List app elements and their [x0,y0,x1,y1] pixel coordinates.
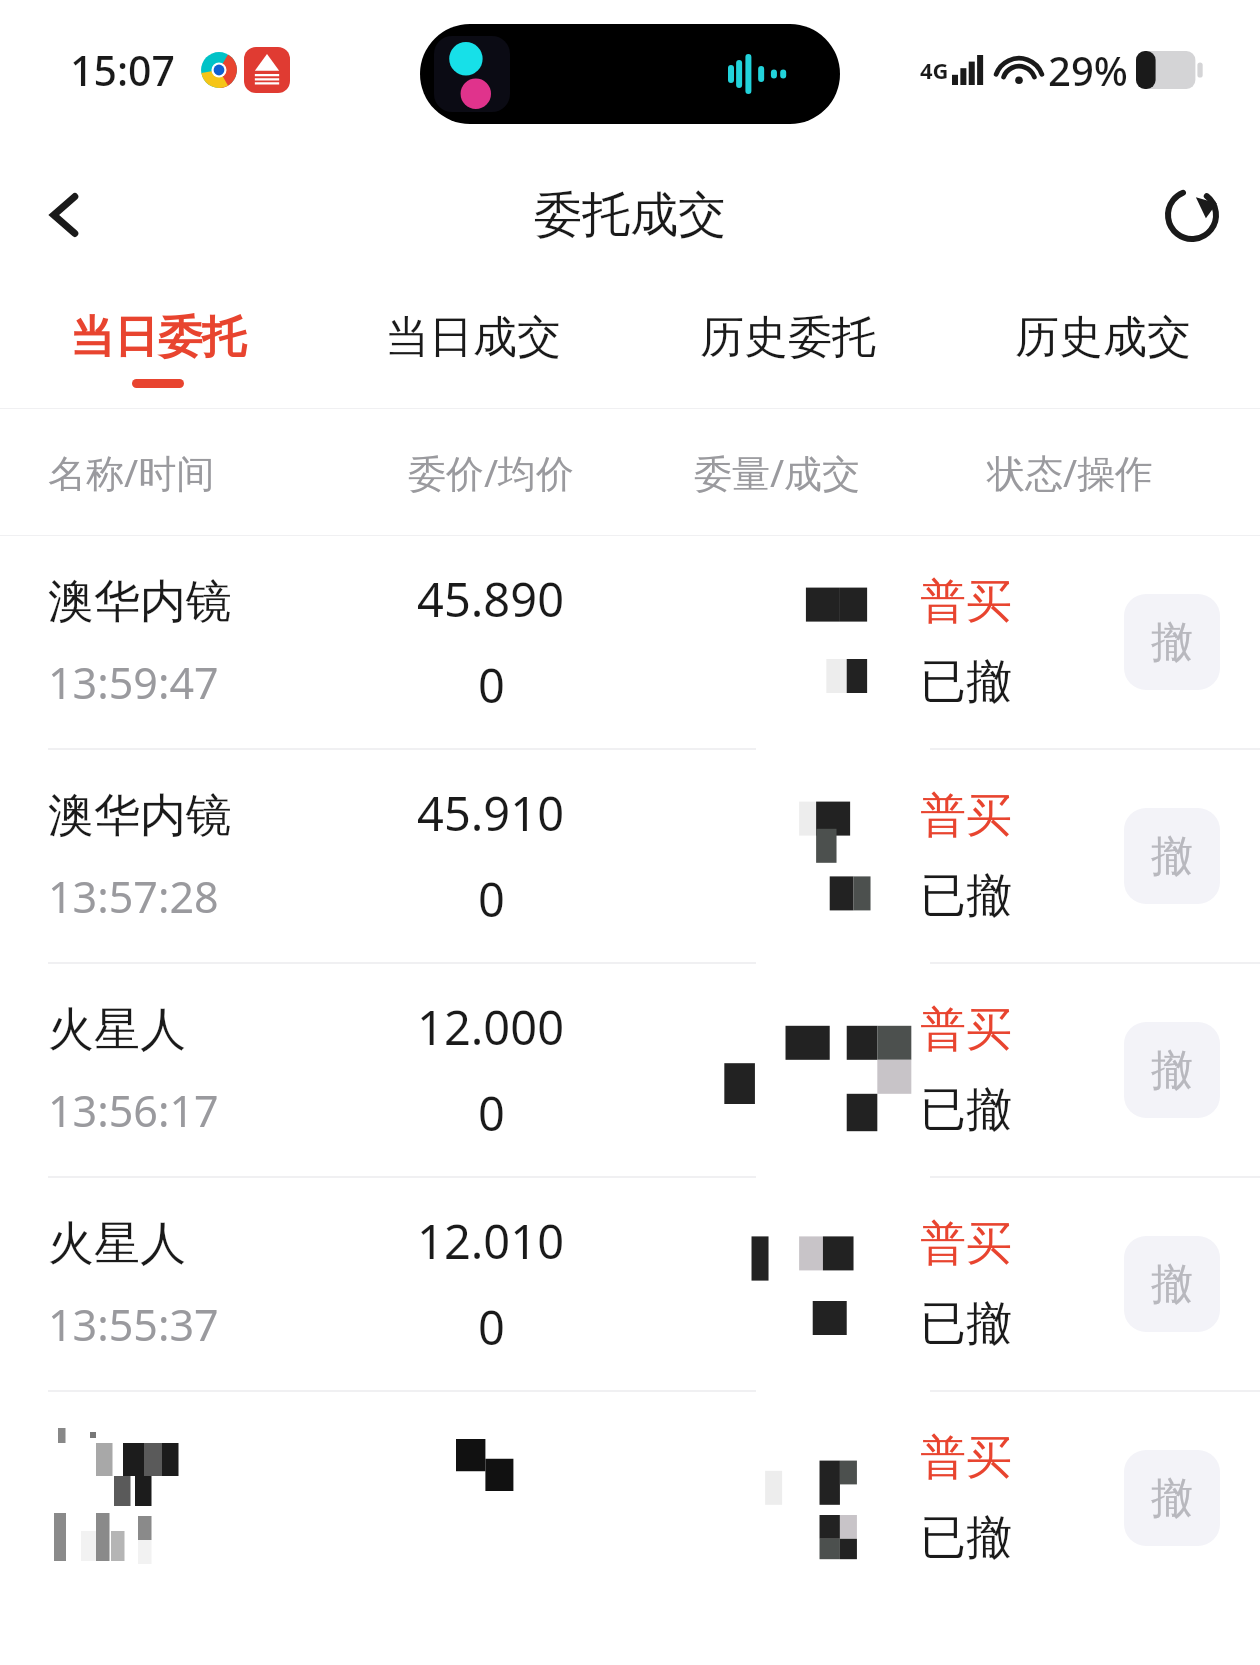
button[interactable]: 撤 [1124,808,1220,904]
staticText: 已撤 [920,867,1012,925]
button[interactable]: Back [20,169,112,261]
button[interactable]: 撤 [1124,1022,1220,1118]
staticText: 普买 [920,1215,1012,1273]
staticText: 普买 [920,787,1012,845]
staticText: 火星人 [48,1001,186,1059]
button[interactable]: Refresh [1146,169,1238,261]
button[interactable]: 澳华内镜 [0,536,1260,748]
staticText: 0 [478,1295,505,1359]
staticText: 普买 [920,1429,1012,1487]
staticText: 名称/时间 [48,446,348,498]
staticText: 12.000 [417,995,565,1059]
button[interactable]: 当日委托 [0,290,315,408]
staticText: 撤 [1151,616,1193,669]
button[interactable]: 撤 [1124,1450,1220,1546]
staticText: 普买 [920,573,1012,631]
staticText: 45.910 [417,781,565,845]
staticText: 13:56:17 [48,1081,219,1140]
staticText: 已撤 [920,1295,1012,1353]
staticText: 历史委托 [700,310,876,365]
staticText: 已撤 [920,1081,1012,1139]
button[interactable]: 当日成交 [315,290,630,408]
staticText: 已撤 [920,1509,1012,1567]
button[interactable]: 撤 [1124,1236,1220,1332]
staticText: 撤 [1151,1472,1193,1525]
staticText: 29% [1048,43,1128,97]
button[interactable]: 普买 [0,1392,1260,1604]
staticText: 撤 [1151,1258,1193,1311]
staticText: 45.890 [417,567,565,631]
staticText: 澳华内镜 [48,787,232,845]
staticText: 委价/均价 [348,446,634,498]
button[interactable]: 火星人 [0,964,1260,1176]
staticText: 15:07 [70,42,175,98]
staticText: 撤 [1151,830,1193,883]
staticText: 4G [920,55,949,85]
staticText: 0 [478,653,505,717]
button[interactable]: 撤 [1124,594,1220,690]
staticText: 撤 [1151,1044,1193,1097]
staticText: 13:57:28 [48,867,219,926]
staticText: 历史成交 [1015,310,1191,365]
staticText: 普买 [920,1001,1012,1059]
staticText: 委量/成交 [634,446,920,498]
staticText: 状态/操作 [920,446,1220,498]
staticText: 0 [478,1081,505,1145]
staticText: 当日委托 [70,310,246,365]
staticText: 12.010 [417,1209,565,1273]
staticText: 0 [478,867,505,931]
staticText: 委托成交 [534,185,726,245]
staticText: 当日成交 [385,310,561,365]
button[interactable]: 火星人 [0,1178,1260,1390]
button[interactable]: 历史成交 [945,290,1260,408]
button[interactable]: 历史委托 [630,290,945,408]
staticText: 13:55:37 [48,1295,219,1354]
staticText: 13:59:47 [48,653,219,712]
staticText: 澳华内镜 [48,573,232,631]
staticText: 火星人 [48,1215,186,1273]
staticText: 已撤 [920,653,1012,711]
button[interactable]: 澳华内镜 [0,750,1260,962]
